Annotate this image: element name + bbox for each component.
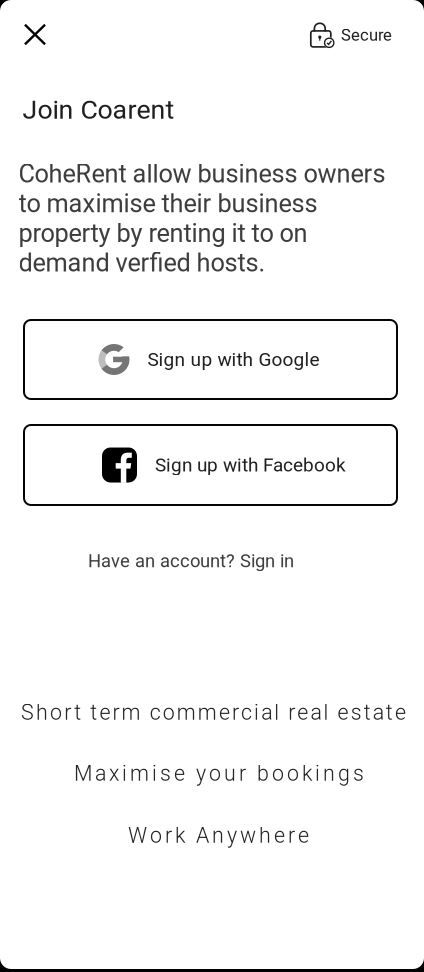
staticText: Secure — [341, 25, 392, 45]
button[interactable]: Close — [13, 12, 57, 56]
staticText: Work Anywhere — [128, 823, 309, 848]
button[interactable]: Sign up with Facebook — [24, 425, 397, 505]
staticText: Short term commercial real estate — [21, 700, 406, 725]
staticText: Sign up with Facebook — [155, 454, 346, 476]
button[interactable]: Have an account? Sign in — [79, 543, 303, 579]
staticText: Maximise your bookings — [74, 761, 364, 786]
staticText: Have an account? Sign in — [88, 550, 294, 572]
button[interactable]: Sign up with Google — [24, 320, 397, 399]
staticText: Join Coarent — [22, 94, 174, 125]
staticText: CoheRent allow business owners to maximi… — [18, 159, 385, 278]
staticText: Sign up with Google — [147, 348, 319, 371]
